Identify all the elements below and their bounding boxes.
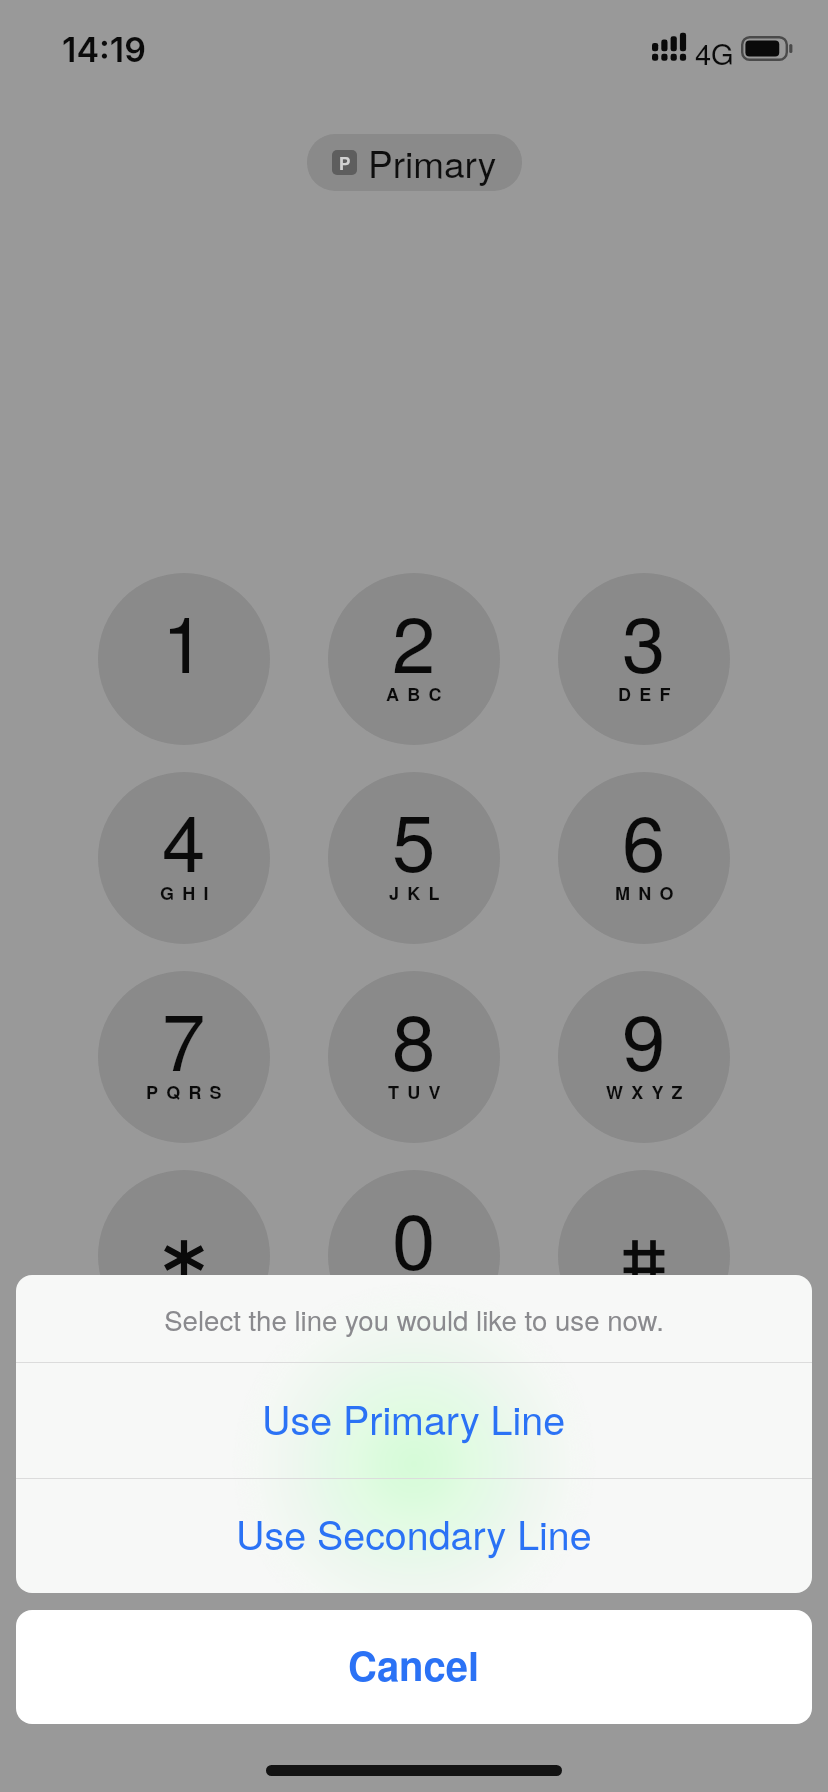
staticText: 9 bbox=[622, 981, 666, 1093]
button[interactable]: 9 bbox=[558, 971, 730, 1143]
staticText: PQRS bbox=[146, 1079, 230, 1105]
other: Cellular signal strength bbox=[652, 33, 687, 61]
staticText: P bbox=[339, 151, 351, 175]
staticText: Use Primary Line bbox=[262, 1390, 566, 1446]
staticText: 6 bbox=[622, 782, 666, 894]
button[interactable]: Star bbox=[98, 1170, 270, 1342]
staticText: ABC bbox=[386, 681, 450, 707]
button[interactable]: 3 bbox=[558, 573, 730, 745]
staticText: TUV bbox=[388, 1079, 449, 1105]
button[interactable]: 8 bbox=[328, 971, 500, 1143]
staticText: 1 bbox=[162, 583, 206, 695]
staticText: Cancel bbox=[348, 1636, 480, 1693]
staticText: 5 bbox=[392, 782, 436, 894]
button[interactable]: Use Primary Line bbox=[16, 1363, 812, 1478]
button[interactable]: 0 bbox=[328, 1170, 500, 1342]
button[interactable]: 4 bbox=[98, 772, 270, 944]
staticText: 14:19 bbox=[62, 29, 146, 70]
staticText: 4G bbox=[695, 32, 734, 74]
button[interactable]: 6 bbox=[558, 772, 730, 944]
staticText: 4 bbox=[162, 782, 206, 894]
staticText: 0 bbox=[392, 1180, 436, 1292]
button[interactable]: Use Secondary Line bbox=[16, 1479, 812, 1593]
staticText: 8 bbox=[392, 981, 436, 1093]
button[interactable]: Cancel bbox=[16, 1610, 812, 1724]
staticText: DEF bbox=[618, 681, 679, 707]
staticText: 7 bbox=[162, 981, 206, 1093]
staticText: Select the line you would like to use no… bbox=[164, 1299, 664, 1339]
button[interactable]: 1 bbox=[98, 573, 270, 745]
other: Battery bbox=[741, 36, 793, 62]
staticText: MNO bbox=[615, 880, 682, 906]
button[interactable]: 2 bbox=[328, 573, 500, 745]
staticText: 3 bbox=[622, 583, 666, 695]
button[interactable]: 5 bbox=[328, 772, 500, 944]
staticText: Use Secondary Line bbox=[236, 1505, 592, 1561]
staticText: WXYZ bbox=[606, 1079, 691, 1105]
staticText: GHI bbox=[160, 880, 217, 906]
staticText: 2 bbox=[392, 583, 436, 695]
button[interactable]: 7 bbox=[98, 971, 270, 1143]
staticText: Primary bbox=[368, 136, 497, 189]
button[interactable]: P bbox=[307, 134, 522, 191]
staticText: JKL bbox=[389, 880, 448, 906]
button[interactable]: Pound bbox=[558, 1170, 730, 1342]
